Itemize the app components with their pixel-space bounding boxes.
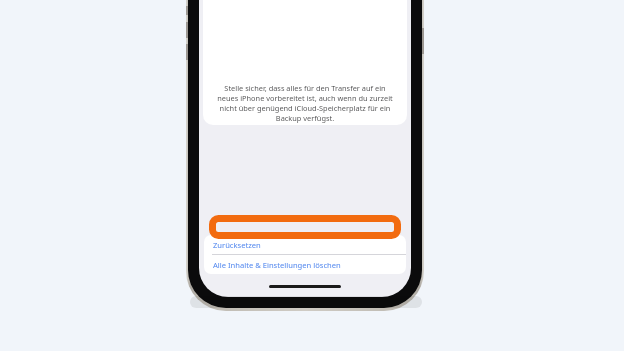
- button[interactable]: Zurücksetzen: [204, 235, 406, 254]
- staticText: Zurücksetzen: [213, 240, 261, 250]
- staticText: Alle Inhalte & Einstellungen löschen: [213, 260, 341, 270]
- other: Hervorhebung: Alle Inhalte & Einstellung…: [209, 215, 401, 239]
- button[interactable]: Alle Inhalte & Einstellungen löschen: [204, 255, 406, 274]
- staticText: Stelle sicher, dass alles für den Transf…: [215, 83, 395, 123]
